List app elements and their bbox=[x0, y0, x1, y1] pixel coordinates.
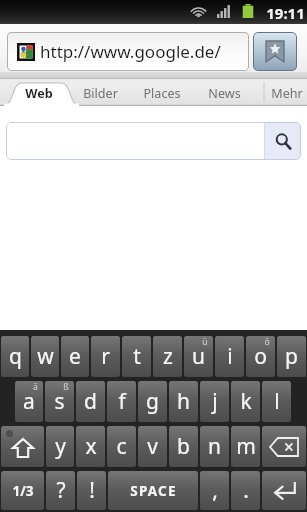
staticText: b bbox=[177, 432, 190, 461]
button[interactable]: Search bbox=[265, 122, 301, 160]
button[interactable]: Bilder bbox=[71, 78, 129, 106]
staticText: s bbox=[54, 387, 65, 416]
staticText: m bbox=[236, 432, 256, 461]
button[interactable]: a bbox=[15, 381, 43, 422]
button[interactable]: z bbox=[153, 336, 182, 377]
button[interactable]: , bbox=[200, 471, 229, 510]
staticText: . bbox=[243, 476, 249, 505]
button[interactable]: Shift bbox=[1, 426, 44, 467]
staticText: ß bbox=[63, 381, 69, 393]
button[interactable]: y bbox=[46, 426, 74, 467]
staticText: ! bbox=[89, 476, 95, 505]
button[interactable]: f bbox=[107, 381, 136, 422]
staticText: o bbox=[254, 342, 267, 371]
staticText: Bilder bbox=[83, 85, 118, 102]
staticText: d bbox=[84, 387, 97, 416]
button[interactable]: r bbox=[91, 336, 120, 377]
button[interactable]: v bbox=[138, 426, 167, 467]
button[interactable]: q bbox=[1, 336, 29, 377]
staticText: l bbox=[274, 387, 280, 416]
staticText: , bbox=[212, 476, 218, 505]
staticText: x bbox=[85, 432, 97, 461]
staticText: y bbox=[55, 432, 66, 461]
button[interactable]: m bbox=[231, 426, 260, 467]
staticText: t bbox=[133, 342, 141, 371]
staticText: SPACE bbox=[130, 482, 177, 500]
button[interactable]: News bbox=[195, 78, 253, 106]
staticText: j bbox=[212, 387, 218, 416]
button[interactable]: c bbox=[107, 426, 136, 467]
staticText: ü bbox=[202, 336, 208, 348]
button[interactable]: x bbox=[76, 426, 105, 467]
button[interactable]: Places bbox=[133, 78, 191, 106]
button[interactable]: k bbox=[231, 381, 260, 422]
button[interactable]: Mehr bbox=[258, 78, 307, 106]
staticText: z bbox=[163, 342, 173, 371]
button[interactable]: 1/3 bbox=[1, 471, 44, 510]
button[interactable]: . bbox=[231, 471, 260, 510]
button[interactable]: n bbox=[200, 426, 229, 467]
staticText: w bbox=[37, 342, 54, 371]
staticText: n bbox=[208, 432, 221, 461]
button[interactable]: Bookmarks bbox=[253, 32, 297, 71]
staticText: k bbox=[240, 387, 252, 416]
staticText: Web bbox=[25, 85, 53, 102]
button[interactable] bbox=[6, 122, 264, 160]
staticText: 1/3 bbox=[12, 482, 34, 500]
staticText: Places bbox=[143, 85, 181, 102]
button[interactable]: w bbox=[31, 336, 59, 377]
button[interactable]: g bbox=[138, 381, 167, 422]
button[interactable]: u bbox=[184, 336, 213, 377]
button[interactable]: p bbox=[277, 336, 306, 377]
staticText: a bbox=[23, 387, 35, 416]
staticText: ä bbox=[33, 381, 38, 393]
button[interactable]: Enter bbox=[262, 471, 306, 510]
button[interactable]: s bbox=[45, 381, 74, 422]
button[interactable]: d bbox=[76, 381, 105, 422]
staticText: p bbox=[285, 342, 298, 371]
button[interactable]: ! bbox=[77, 471, 106, 510]
button[interactable]: j bbox=[200, 381, 229, 422]
staticText: v bbox=[147, 432, 158, 461]
staticText: f bbox=[118, 387, 126, 416]
button[interactable]: SPACE bbox=[108, 471, 198, 510]
button[interactable]: ? bbox=[46, 471, 75, 510]
button[interactable]: Web bbox=[10, 78, 68, 106]
staticText: Mehr bbox=[271, 85, 303, 102]
staticText: c bbox=[116, 432, 127, 461]
staticText: http://www.google.de/ bbox=[40, 40, 221, 63]
button[interactable]: http://www.google.de/ bbox=[7, 32, 249, 71]
button[interactable]: i bbox=[215, 336, 244, 377]
staticText: h bbox=[177, 387, 190, 416]
staticText: 19:11 bbox=[266, 3, 305, 23]
button[interactable]: l bbox=[262, 381, 291, 422]
button[interactable]: e bbox=[61, 336, 89, 377]
staticText: ö bbox=[264, 336, 270, 348]
staticText: i bbox=[227, 342, 233, 371]
staticText: ? bbox=[56, 476, 66, 505]
button[interactable]: o bbox=[246, 336, 275, 377]
staticText: u bbox=[192, 342, 205, 371]
button[interactable]: h bbox=[169, 381, 198, 422]
staticText: e bbox=[69, 342, 81, 371]
staticText: r bbox=[101, 342, 110, 371]
button[interactable]: t bbox=[122, 336, 151, 377]
staticText: News bbox=[208, 85, 241, 102]
staticText: g bbox=[146, 387, 159, 416]
button[interactable]: b bbox=[169, 426, 198, 467]
button[interactable]: Delete bbox=[262, 426, 306, 467]
staticText: q bbox=[9, 342, 22, 371]
